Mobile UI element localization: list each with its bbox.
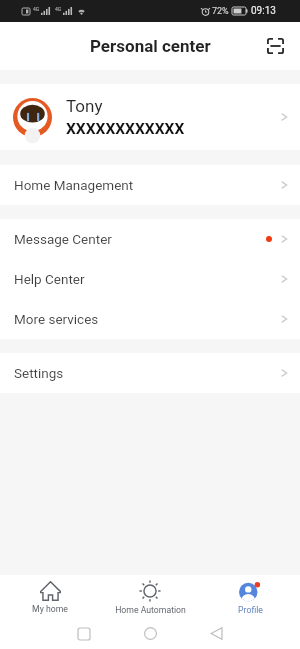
button[interactable]: Message Center [0, 219, 300, 259]
staticText: Profile [238, 605, 263, 615]
button[interactable]: Scan QR code [261, 32, 289, 60]
button[interactable]: More services [0, 299, 300, 339]
staticText: Help Center [14, 271, 85, 287]
staticText: Tony [66, 96, 103, 116]
staticText: XXXXXXXXXXXX [66, 120, 185, 138]
staticText: Home Management [14, 177, 134, 193]
staticText: 4G [55, 6, 62, 12]
staticText: Personal center [90, 36, 211, 56]
staticText: 4G [33, 6, 40, 12]
staticText: My home [32, 604, 68, 614]
staticText: Home Automation [115, 605, 186, 615]
button[interactable]: Tony [0, 84, 300, 150]
staticText: 09:13 [251, 5, 276, 17]
button[interactable]: Recent apps [51, 620, 117, 647]
staticText: 72% [212, 6, 229, 17]
button[interactable]: Back [183, 620, 249, 647]
button[interactable]: Home Management [0, 165, 300, 205]
staticText: More services [14, 311, 99, 327]
staticText: Message Center [14, 231, 112, 247]
button[interactable]: Profile [200, 575, 300, 620]
button[interactable]: Help Center [0, 259, 300, 299]
staticText: Settings [14, 365, 64, 381]
button[interactable]: Home Automation [100, 575, 200, 620]
button[interactable]: My home [0, 575, 100, 620]
button[interactable]: Settings [0, 353, 300, 393]
button[interactable]: Home [117, 620, 183, 647]
